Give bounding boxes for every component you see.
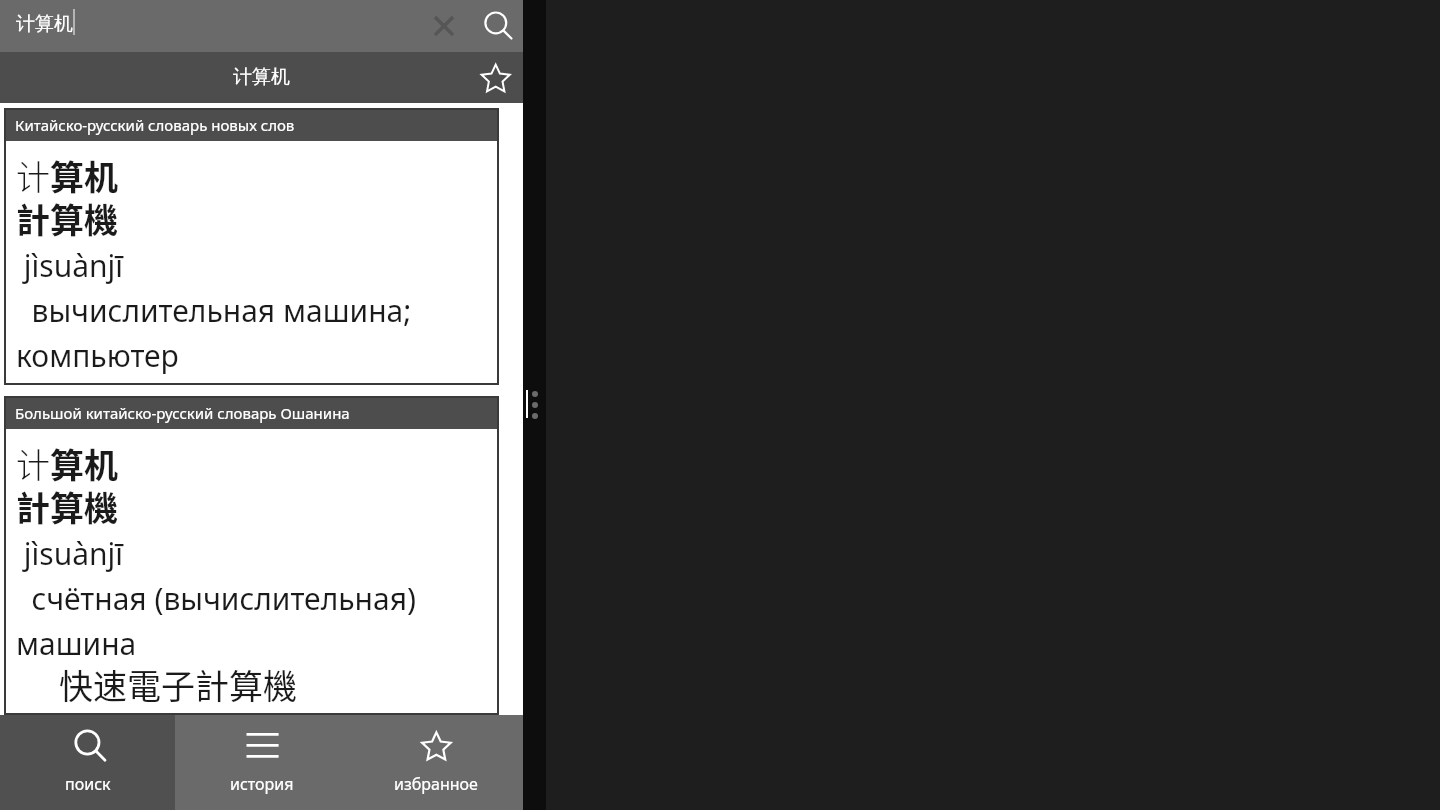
staticText: 计算机 [233, 65, 290, 89]
button[interactable]: Add to favorites [474, 58, 518, 102]
staticText: jìsuànjī [16, 242, 124, 287]
staticText: избранное [394, 773, 478, 795]
staticText: Китайско-русский словарь новых слов [15, 115, 295, 135]
button[interactable]: Search [473, 0, 519, 46]
staticText: история [230, 773, 294, 795]
staticText: 计算机 [16, 12, 73, 36]
staticText: 快速電子計算機 [59, 665, 297, 707]
staticText: 计算机 [16, 154, 118, 199]
staticText: 計算機 [16, 199, 118, 242]
staticText: Большой китайско-русский словарь Ошанина [15, 403, 350, 423]
button[interactable]: поиск [0, 715, 175, 810]
staticText: поиск [65, 773, 111, 795]
staticText: счётная (вычислительная) машина [16, 575, 493, 665]
button[interactable]: Clear search [425, 7, 463, 45]
staticText: 計算機 [16, 487, 118, 530]
staticText: 计算机 [16, 442, 118, 487]
button[interactable]: избранное [349, 715, 523, 810]
button[interactable]: история [175, 715, 349, 810]
staticText: вычислительная машина; компьютер [16, 287, 493, 377]
staticText: jìsuànjī [16, 530, 124, 575]
